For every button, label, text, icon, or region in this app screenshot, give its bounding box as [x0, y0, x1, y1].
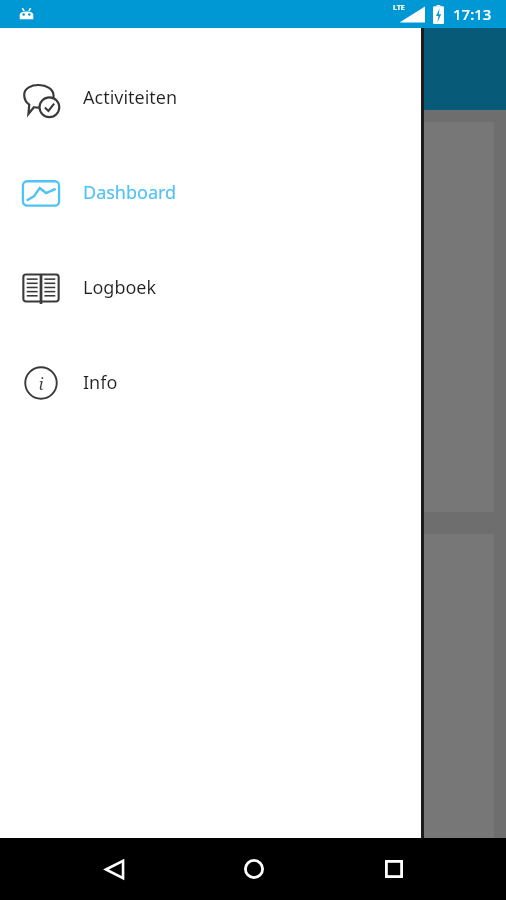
button[interactable]: Back [90, 845, 138, 893]
staticText: Info [83, 370, 118, 395]
button[interactable]: i [0, 335, 421, 430]
button[interactable]: Home [230, 845, 278, 893]
button[interactable]: Recent apps [370, 845, 418, 893]
button[interactable]: Logboek [0, 240, 421, 335]
staticText: 17:13 [453, 4, 492, 24]
staticText: Activiteiten [83, 85, 178, 110]
staticText: LTE [393, 3, 405, 13]
button[interactable]: Activiteiten [0, 50, 421, 145]
button[interactable]: Dashboard [0, 145, 421, 240]
staticText: Dashboard [83, 180, 177, 205]
staticText: i [38, 372, 44, 395]
staticText: Logboek [83, 275, 157, 300]
